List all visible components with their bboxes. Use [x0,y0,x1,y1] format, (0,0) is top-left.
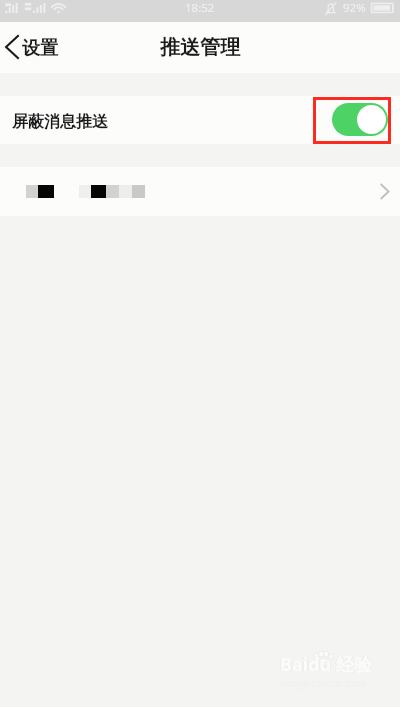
staticText: 18:52 [185,0,215,16]
button[interactable]: Open details [0,167,400,216]
staticText: Baidu 经验 [279,652,371,677]
staticText: 推送管理 [160,35,240,60]
staticText: 屏蔽消息推送 [12,112,108,132]
staticText: Baidu 经验 [280,652,372,677]
staticText: 设置 [22,37,58,60]
staticText: Baidu 经验 [281,652,373,677]
staticText: 92% [343,0,366,16]
button[interactable]: 设置 [0,29,68,67]
other: Open details [380,184,389,199]
button[interactable]: Block push notifications toggle, on [332,103,388,136]
button[interactable]: 屏蔽消息推送 [0,96,400,144]
